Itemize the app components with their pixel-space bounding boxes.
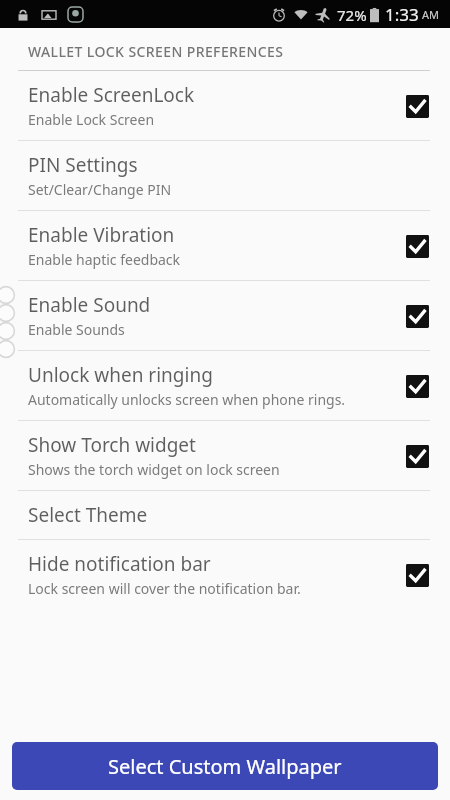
staticText: PIN Settings [28, 152, 138, 178]
staticText: 72% [337, 5, 367, 25]
button[interactable]: Select Theme [0, 491, 450, 539]
staticText: Enable Sounds [28, 320, 346, 339]
button[interactable]: Toggle [404, 303, 430, 329]
button[interactable]: Toggle [404, 373, 430, 399]
staticText: Enable haptic feedback [28, 250, 346, 269]
staticText: Select Theme [28, 502, 148, 528]
staticText: Unlock when ringing [28, 362, 213, 388]
button[interactable]: Toggle [404, 233, 430, 259]
staticText: Shows the torch widget on lock screen [28, 460, 346, 479]
button[interactable]: Unlock when ringing [0, 351, 450, 420]
staticText: Enable Lock Screen [28, 110, 346, 129]
staticText: Select Custom Wallpaper [108, 753, 342, 780]
staticText: Hide notification bar [28, 551, 211, 577]
staticText: Show Torch widget [28, 432, 196, 458]
staticText: Lock screen will cover the notification … [28, 579, 346, 598]
button[interactable]: Select Custom Wallpaper [12, 742, 438, 790]
staticText: Enable Sound [28, 292, 151, 318]
button[interactable]: Toggle [404, 562, 430, 588]
button[interactable]: PIN Settings [0, 141, 450, 210]
button[interactable]: Show Torch widget [0, 421, 450, 490]
button[interactable]: Enable Sound [0, 281, 450, 350]
staticText: Enable Vibration [28, 222, 175, 248]
button[interactable]: Hide notification bar [0, 540, 450, 609]
staticText: WALLET LOCK SCREEN PREFERENCES [28, 42, 284, 61]
button[interactable]: Enable ScreenLock [0, 71, 450, 140]
staticText: Enable ScreenLock [28, 82, 195, 108]
staticText: 1:33 [385, 3, 419, 26]
button[interactable]: Enable Vibration [0, 211, 450, 280]
button[interactable]: Toggle [404, 443, 430, 469]
staticText: AM [422, 7, 440, 22]
staticText: Set/Clear/Change PIN [28, 180, 378, 199]
staticText: Automatically unlocks screen when phone … [28, 390, 346, 409]
button[interactable]: Toggle [404, 93, 430, 119]
